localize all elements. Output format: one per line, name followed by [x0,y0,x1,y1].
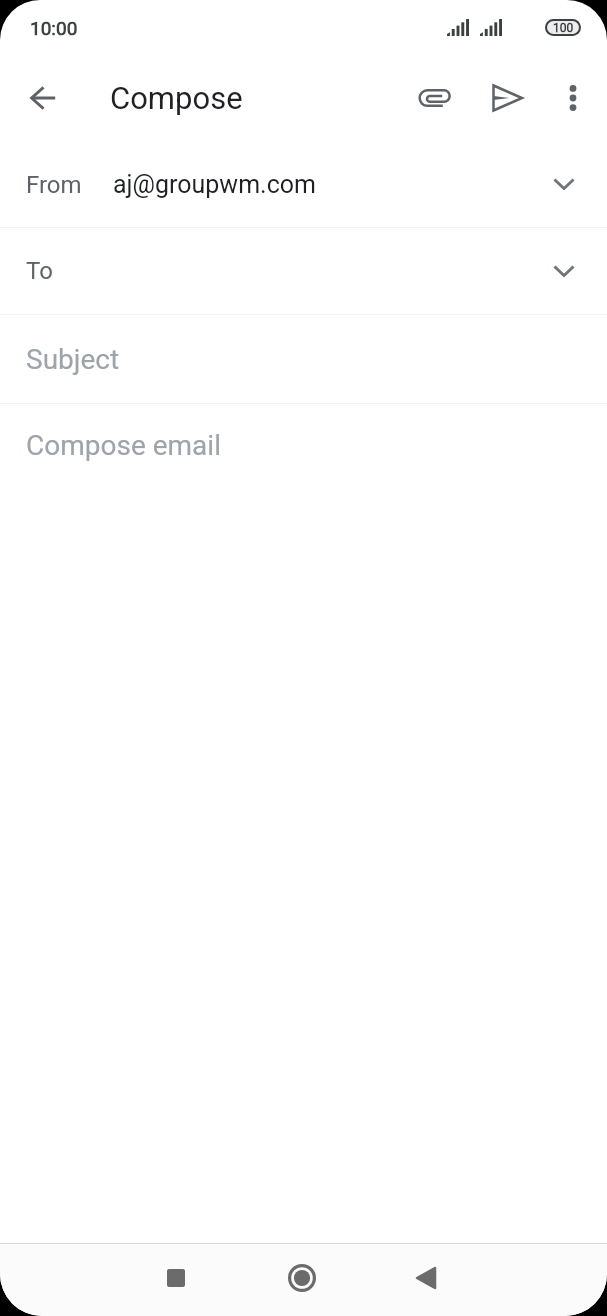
button[interactable]: From [0,141,607,227]
staticText: 100 [553,21,574,34]
button[interactable]: Back [398,1250,454,1306]
button[interactable]: More options [545,70,601,126]
button[interactable]: Navigate up [15,70,71,126]
staticText: From [26,171,82,199]
staticText: 10:00 [30,17,78,39]
button[interactable]: Home [274,1250,330,1306]
button[interactable]: Send [479,70,535,126]
button[interactable]: Expand recipients [545,165,583,203]
button[interactable]: Expand recipients [545,252,583,290]
staticText: Compose [110,80,243,116]
button[interactable]: Recent apps [148,1250,204,1306]
button[interactable]: Compose email [0,404,607,486]
button[interactable]: Attach file [405,70,461,126]
staticText: Subject [26,343,120,376]
staticText: aj@groupwm.com [113,170,316,199]
staticText: Compose email [26,429,221,462]
staticText: To [26,257,53,285]
button[interactable]: Subject [0,315,607,403]
button[interactable]: To [0,228,607,314]
